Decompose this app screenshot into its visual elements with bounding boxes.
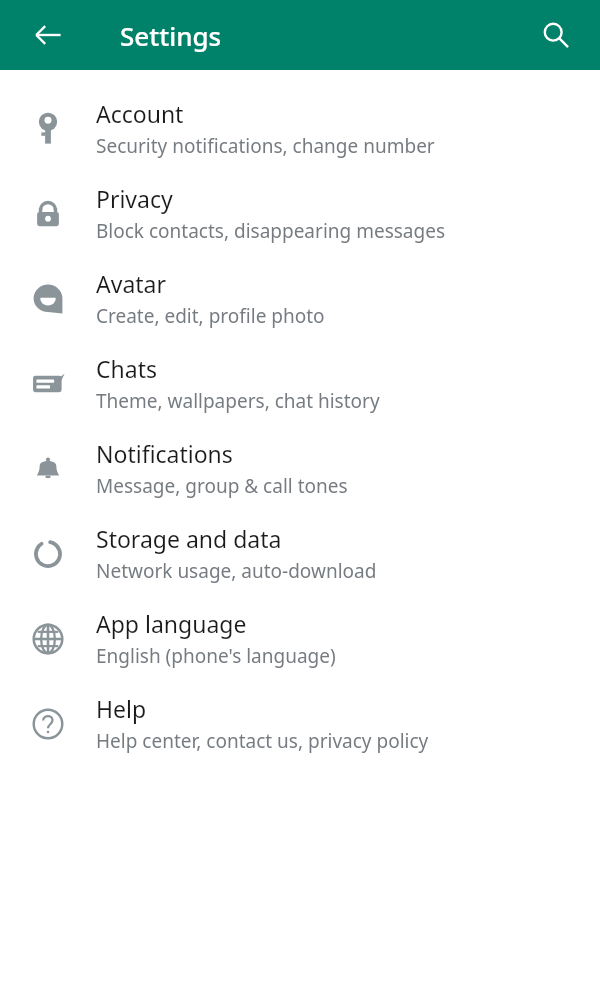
staticText: Notifications — [96, 438, 233, 469]
button[interactable]: Chats — [0, 341, 600, 426]
button[interactable]: Notifications — [0, 426, 600, 511]
button[interactable]: App language — [0, 596, 600, 681]
staticText: Help center, contact us, privacy policy — [96, 728, 429, 754]
button[interactable]: Search — [530, 9, 582, 61]
button[interactable]: Privacy — [0, 171, 600, 256]
button[interactable]: Avatar — [0, 256, 600, 341]
staticText: Chats — [96, 353, 157, 384]
staticText: Help — [96, 693, 147, 724]
staticText: Create, edit, profile photo — [96, 303, 325, 329]
staticText: Settings — [120, 18, 222, 53]
button[interactable]: Help — [0, 681, 600, 766]
button[interactable]: Storage and data — [0, 511, 600, 596]
staticText: Block contacts, disappearing messages — [96, 218, 445, 244]
staticText: English (phone's language) — [96, 643, 336, 669]
staticText: Account — [96, 98, 184, 129]
staticText: Message, group & call tones — [96, 473, 348, 499]
staticText: App language — [96, 608, 247, 639]
staticText: Privacy — [96, 183, 173, 214]
staticText: Avatar — [96, 268, 166, 299]
staticText: Network usage, auto-download — [96, 558, 377, 584]
staticText: Storage and data — [96, 523, 282, 554]
button[interactable]: Back — [22, 9, 74, 61]
staticText: Theme, wallpapers, chat history — [96, 388, 380, 414]
staticText: Security notifications, change number — [96, 133, 435, 159]
button[interactable]: Account — [0, 86, 600, 171]
